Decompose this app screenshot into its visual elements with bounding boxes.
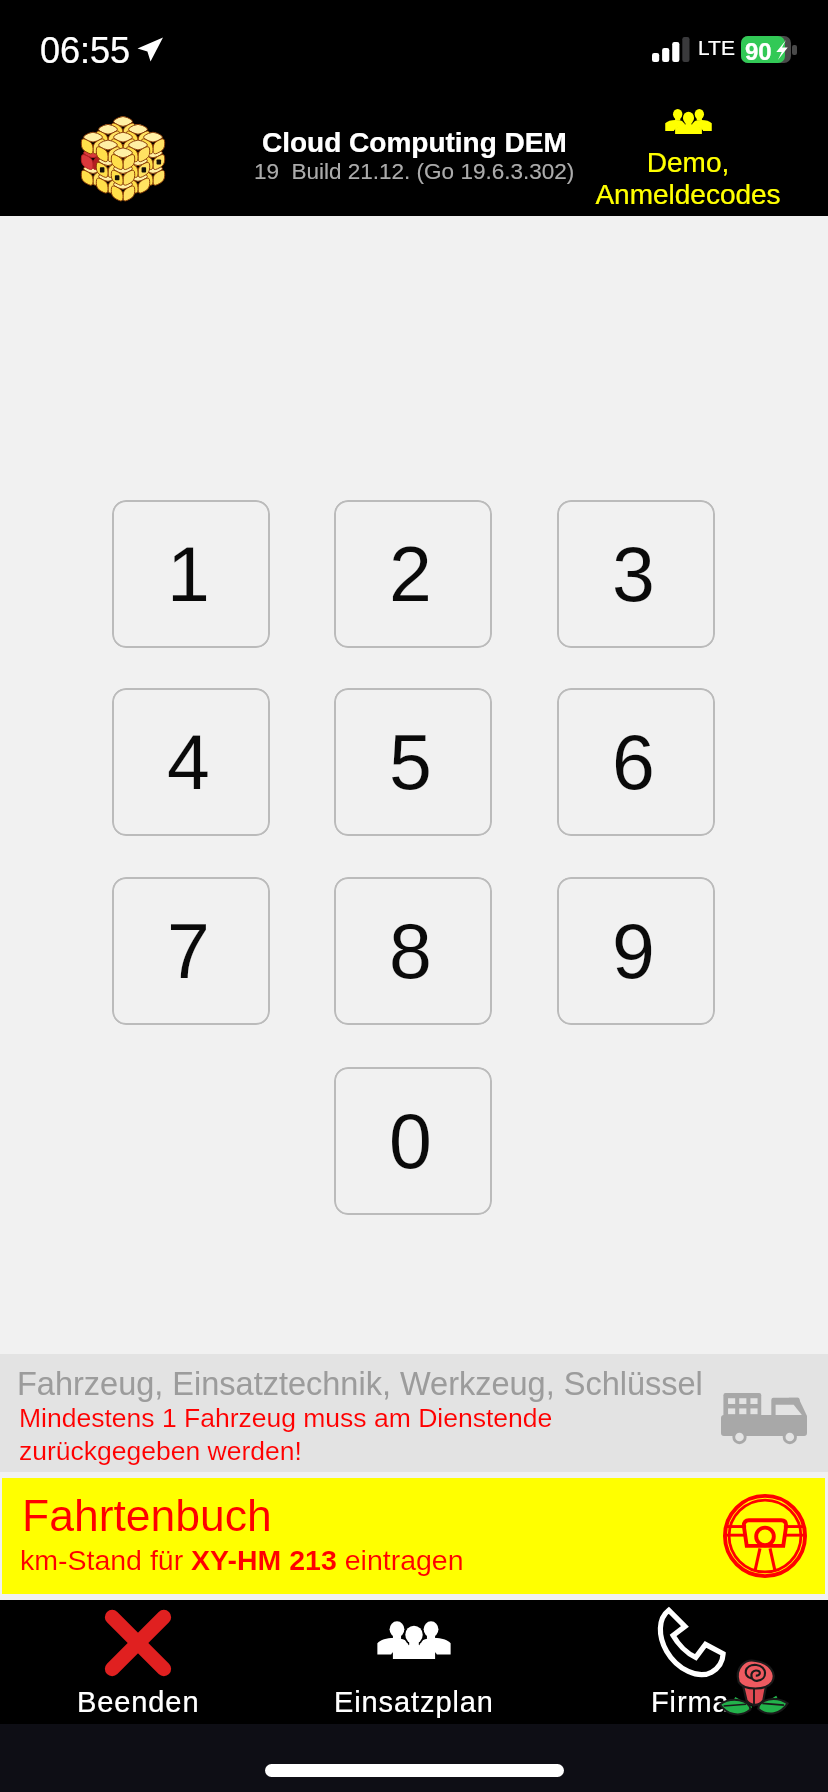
button[interactable]: Einsatzplan <box>276 1600 552 1718</box>
staticText: Einsatzplan <box>334 1686 494 1718</box>
button[interactable]: Firma <box>552 1600 828 1718</box>
staticText: 4 <box>167 719 210 805</box>
button[interactable]: Fahrzeug, Einsatztechnik, Werkzeug, Schl… <box>0 1354 828 1472</box>
button[interactable]: App logo <box>78 109 168 204</box>
staticText: 06:55 <box>40 30 131 70</box>
staticText: Firma <box>651 1686 730 1718</box>
staticText: 2 <box>389 531 432 617</box>
button[interactable]: 8 <box>334 877 492 1025</box>
button[interactable]: Beenden <box>0 1600 276 1718</box>
staticText: 5 <box>389 719 432 805</box>
staticText: LTE <box>698 36 735 59</box>
button[interactable]: 4 <box>112 688 270 836</box>
staticText: Mindestens 1 Fahrzeug muss am Dienstende… <box>19 1403 553 1466</box>
staticText: 9 <box>612 908 655 994</box>
staticText: 0 <box>389 1098 432 1184</box>
staticText: 1 <box>167 531 210 617</box>
button[interactable]: 0 <box>334 1067 492 1215</box>
staticText: 90 <box>745 38 772 65</box>
button[interactable]: 2 <box>334 500 492 648</box>
button[interactable]: Fahrzeuge <box>721 1393 807 1448</box>
staticText: Fahrtenbuch <box>22 1491 272 1541</box>
button[interactable]: 9 <box>557 877 715 1025</box>
button[interactable]: 5 <box>334 688 492 836</box>
staticText: 8 <box>389 908 432 994</box>
staticText: km-Stand für XY-HM 213 eintragen <box>20 1544 464 1576</box>
staticText: 7 <box>167 908 210 994</box>
staticText: Fahrzeug, Einsatztechnik, Werkzeug, Schl… <box>17 1366 703 1402</box>
button[interactable]: 7 <box>112 877 270 1025</box>
staticText: Cloud Computing DEM <box>262 127 567 158</box>
button[interactable]: Fahrtenbuch <box>2 1478 825 1594</box>
button[interactable]: 1 <box>112 500 270 648</box>
button[interactable]: 3 <box>557 500 715 648</box>
staticText: 3 <box>612 531 655 617</box>
button[interactable]: Demo, Anmeldecodes <box>574 108 802 210</box>
staticText: Demo, Anmeldecodes <box>595 147 781 210</box>
staticText: Beenden <box>77 1686 200 1718</box>
button[interactable]: 6 <box>557 688 715 836</box>
staticText: 6 <box>612 719 655 805</box>
staticText: 19 Build 21.12. (Go 19.6.3.302) <box>254 159 575 184</box>
button[interactable]: Fahrtenbuch <box>723 1494 807 1578</box>
